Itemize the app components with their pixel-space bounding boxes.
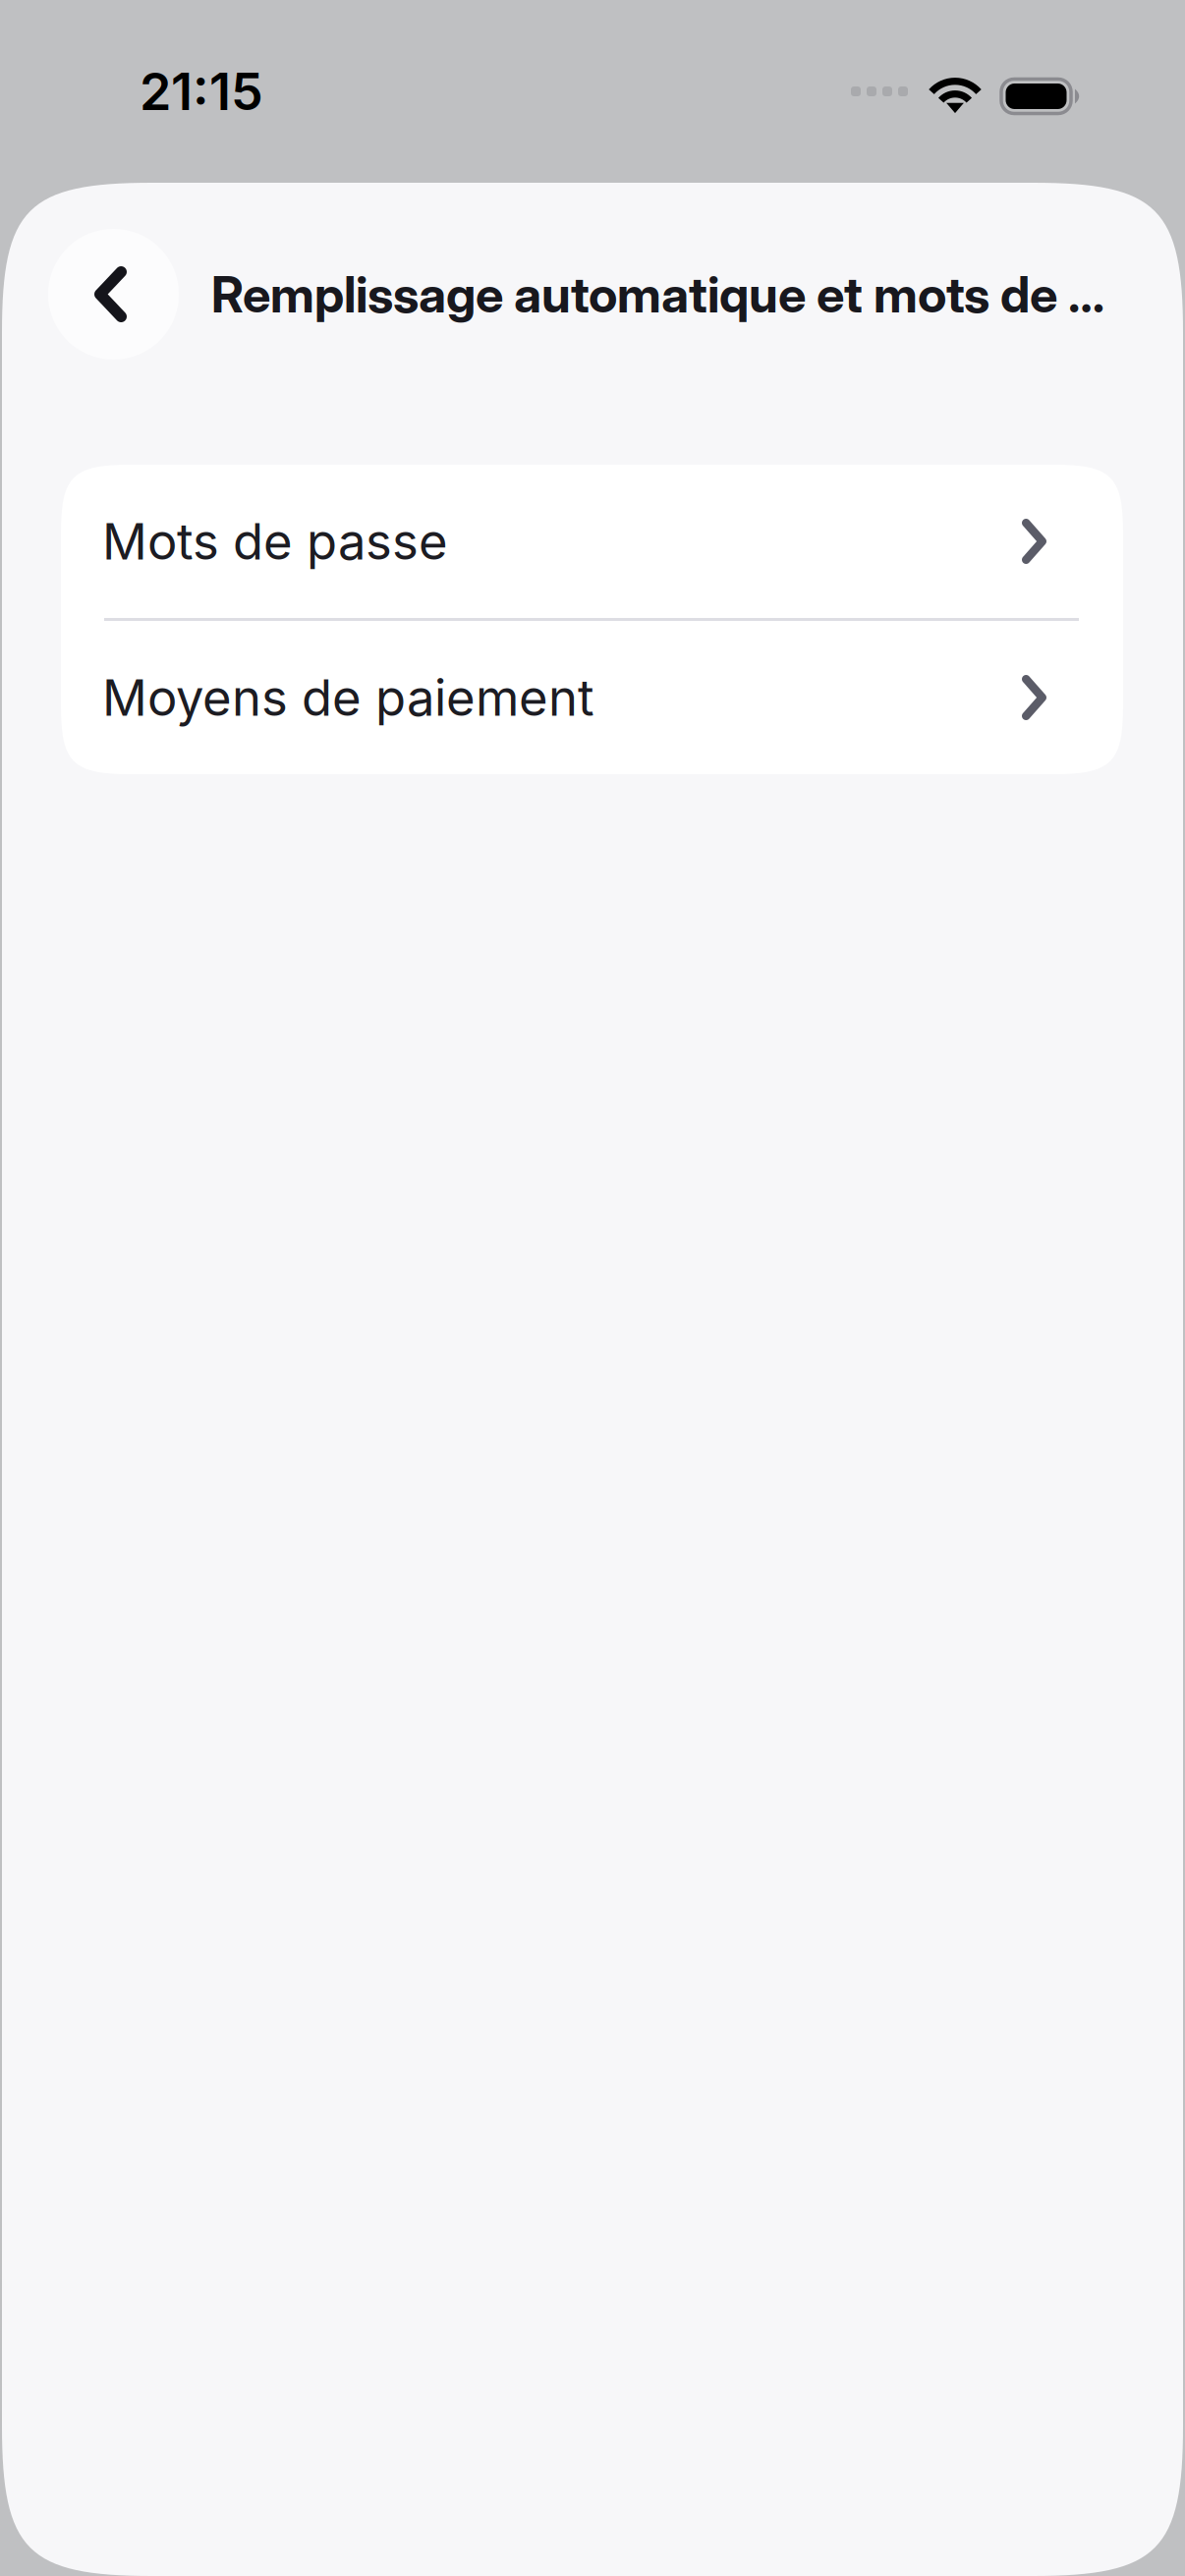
staticText: Remplissage automatique et mots de passe	[211, 264, 1120, 324]
button[interactable]: Moyens de paiement	[61, 621, 1123, 774]
staticText: Mots de passe	[102, 511, 448, 571]
staticText: Moyens de paiement	[102, 667, 594, 728]
staticText: 21:15	[140, 60, 263, 122]
button[interactable]: Mots de passe	[61, 465, 1123, 618]
button[interactable]: Back	[48, 229, 179, 360]
